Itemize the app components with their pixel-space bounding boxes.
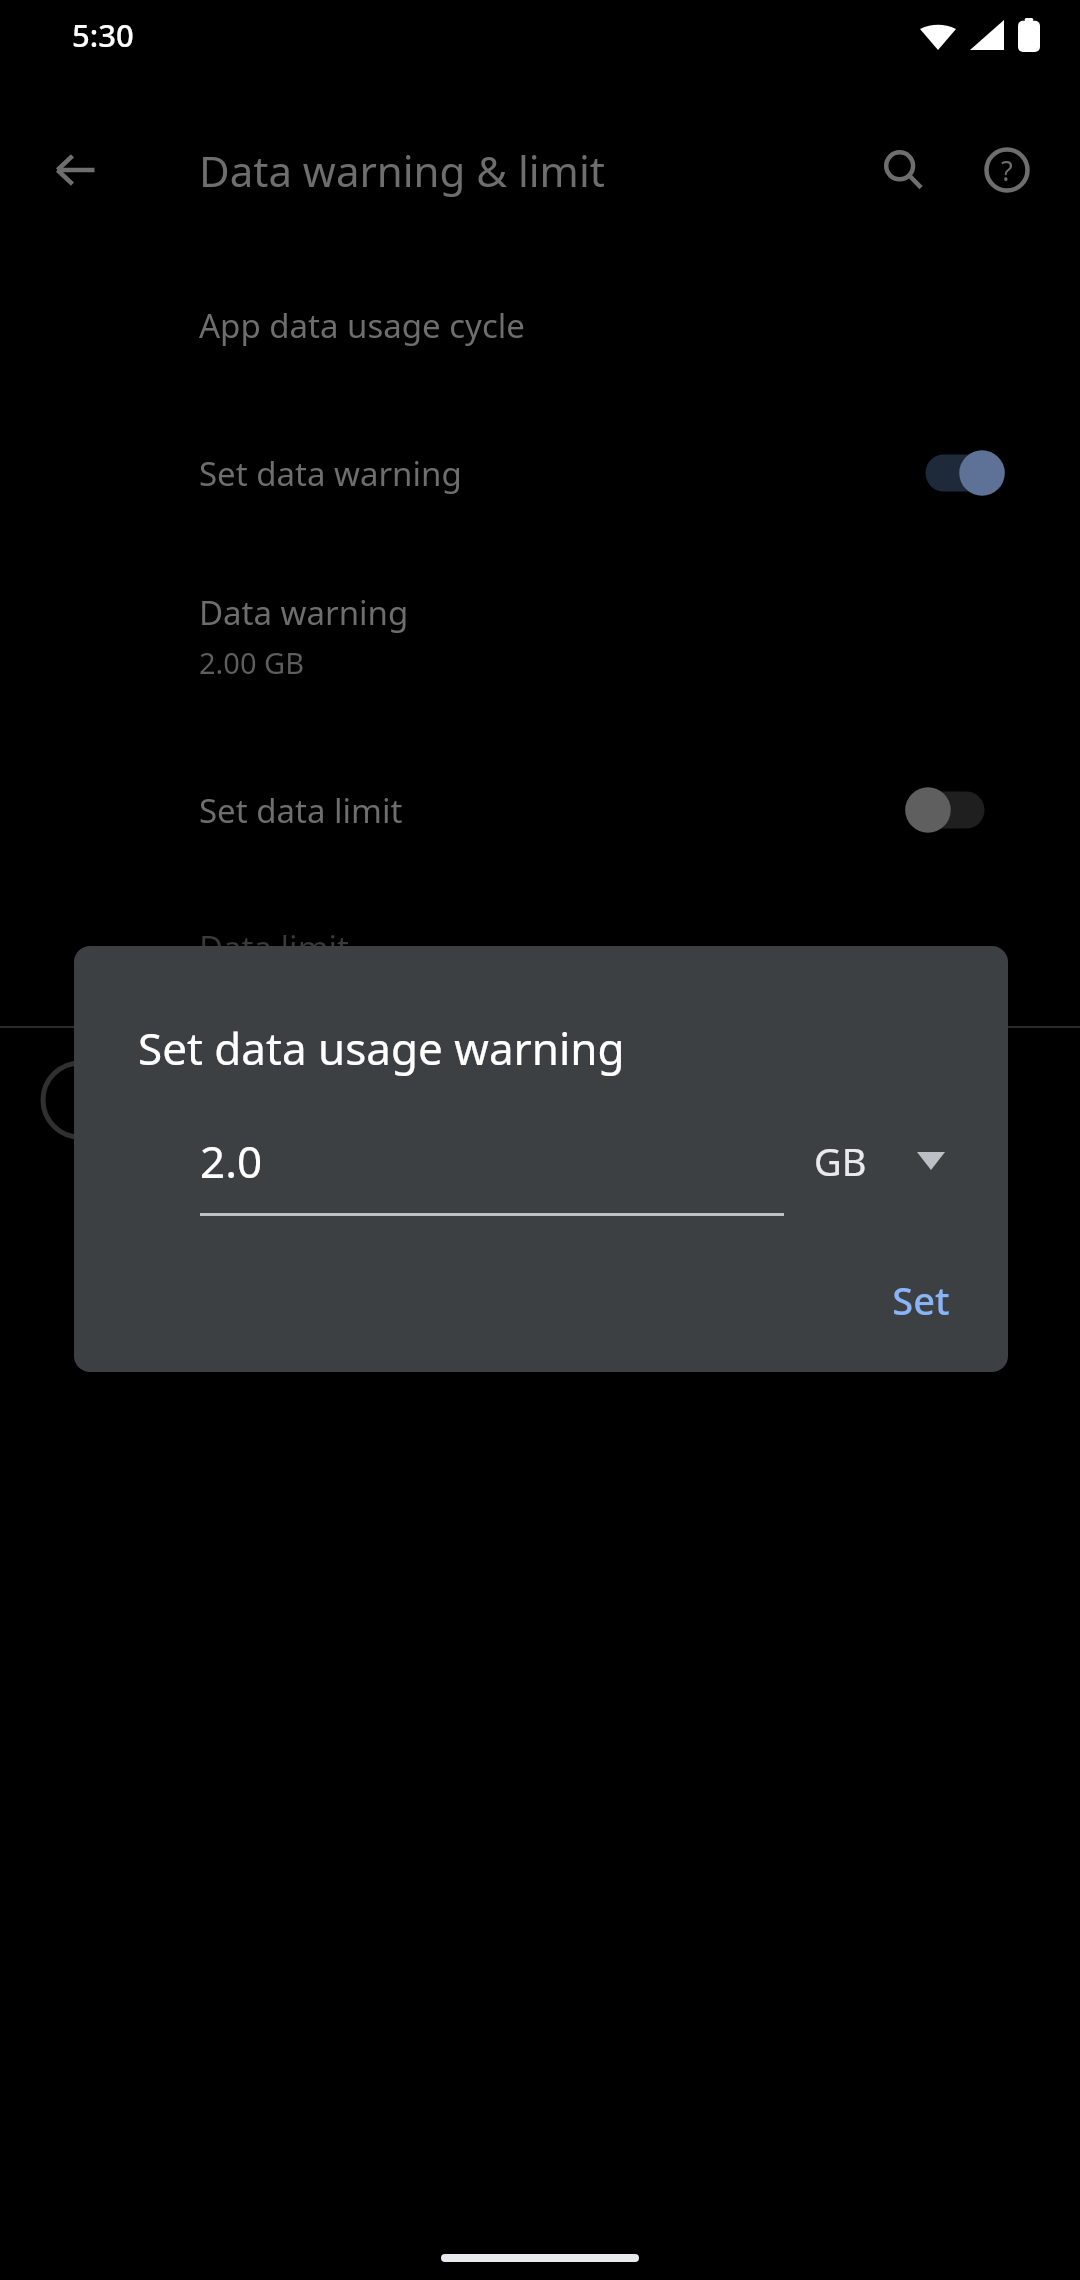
staticText: ? xyxy=(1001,152,1013,189)
button[interactable]: Set data warning xyxy=(0,418,1080,528)
staticText: 2.00 GB xyxy=(199,643,305,682)
staticText: Set xyxy=(892,1274,950,1326)
button[interactable]: Data warning xyxy=(0,566,1080,706)
button[interactable]: 2.0 xyxy=(200,1106,784,1216)
staticText: Data limit xyxy=(199,925,349,970)
staticText: Set data warning xyxy=(199,451,462,496)
button[interactable]: Help xyxy=(964,127,1050,213)
button[interactable]: Back xyxy=(36,130,116,210)
staticText: App data usage cycle xyxy=(199,303,525,348)
button[interactable]: Search xyxy=(860,127,946,213)
button[interactable] xyxy=(902,780,998,840)
staticText: Set data usage warning xyxy=(138,1018,625,1078)
staticText: Set data limit xyxy=(199,788,403,833)
button[interactable]: App data usage cycle xyxy=(0,270,1080,380)
staticText: Data warning & limit xyxy=(199,142,605,199)
button[interactable]: Set xyxy=(868,1258,974,1342)
staticText: 5:30 xyxy=(72,14,134,56)
button[interactable]: GB xyxy=(814,1106,994,1216)
button[interactable] xyxy=(912,443,1008,503)
staticText: Data warning xyxy=(199,590,409,635)
button[interactable]: Set data limit xyxy=(0,755,1080,865)
staticText: GB xyxy=(814,1135,867,1187)
staticText: 2.0 xyxy=(200,1131,263,1191)
